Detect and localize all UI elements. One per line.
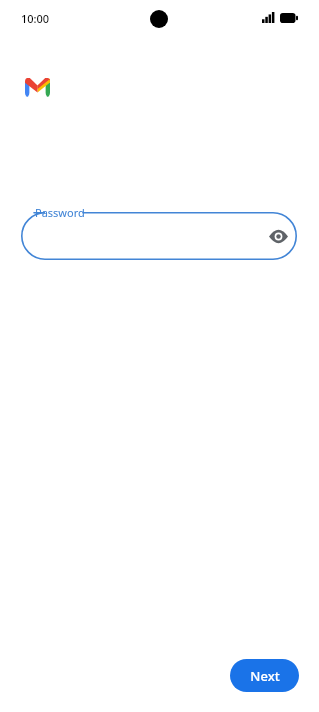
button[interactable]: Show password — [266, 224, 290, 248]
button[interactable]: Next — [230, 659, 299, 692]
button[interactable] — [21, 212, 297, 260]
staticText: 10:00 — [21, 11, 50, 26]
staticText: Next — [250, 667, 280, 685]
staticText: Password — [35, 205, 85, 220]
